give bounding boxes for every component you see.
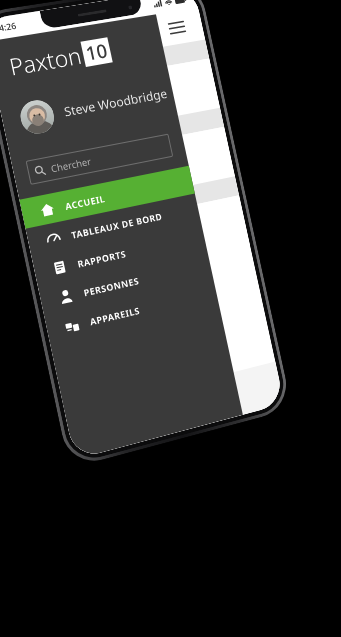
staticText: 1 device offline <box>44 247 99 268</box>
staticText: SUMMARY <box>6 72 49 90</box>
button[interactable]: NOTIFICATIONS <box>8 108 224 168</box>
staticText: Access events today <box>14 102 86 124</box>
button[interactable]: ACCUEIL <box>19 166 195 229</box>
button[interactable]: RAPPORTS <box>32 221 207 287</box>
staticText: Steve Woodbridge <box>63 85 169 120</box>
staticText: PERSONNES <box>82 274 140 298</box>
staticText: Unacknowledged alarms <box>29 169 117 196</box>
button[interactable]: TABLEAUX DE BORD <box>25 193 201 258</box>
staticText: RAPPORTS <box>76 247 127 270</box>
button[interactable]: SUMMARY <box>0 39 209 96</box>
staticText: NOTIFICATIONS <box>21 139 85 161</box>
staticText: 14:26 <box>0 20 17 35</box>
button[interactable]: APPAREILS <box>44 277 219 345</box>
staticText: TABLEAUX DE BORD <box>70 210 164 241</box>
staticText: 10 <box>83 38 110 66</box>
staticText: APPAREILS <box>89 304 141 327</box>
staticText: Chercher <box>50 155 92 175</box>
button[interactable]: PERSONNES <box>38 249 213 316</box>
button[interactable]: Menu <box>162 13 192 42</box>
staticText: SYSTEM <box>37 216 70 233</box>
staticText: Paxton <box>6 39 84 82</box>
button[interactable]: Steve Woodbridge <box>0 74 177 142</box>
button[interactable]: SYSTEM <box>23 176 239 240</box>
button[interactable]: Chercher <box>26 134 173 185</box>
button[interactable]: Paxton <box>6 34 113 82</box>
staticText: ACCUEIL <box>64 192 106 212</box>
